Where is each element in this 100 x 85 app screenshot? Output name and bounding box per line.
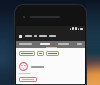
button[interactable]: Menu (19, 35, 22, 38)
button[interactable]: Filter chip (19, 51, 35, 56)
button[interactable]: Avatar (19, 62, 28, 71)
button[interactable]: Filter chip (37, 51, 44, 56)
button[interactable]: Tab (57, 41, 70, 47)
button[interactable]: Tab (39, 41, 51, 47)
button[interactable]: Filter chip (46, 51, 59, 56)
button[interactable]: Tab (76, 41, 83, 47)
button[interactable]: Action (19, 77, 37, 82)
button[interactable]: Tab (18, 41, 33, 47)
